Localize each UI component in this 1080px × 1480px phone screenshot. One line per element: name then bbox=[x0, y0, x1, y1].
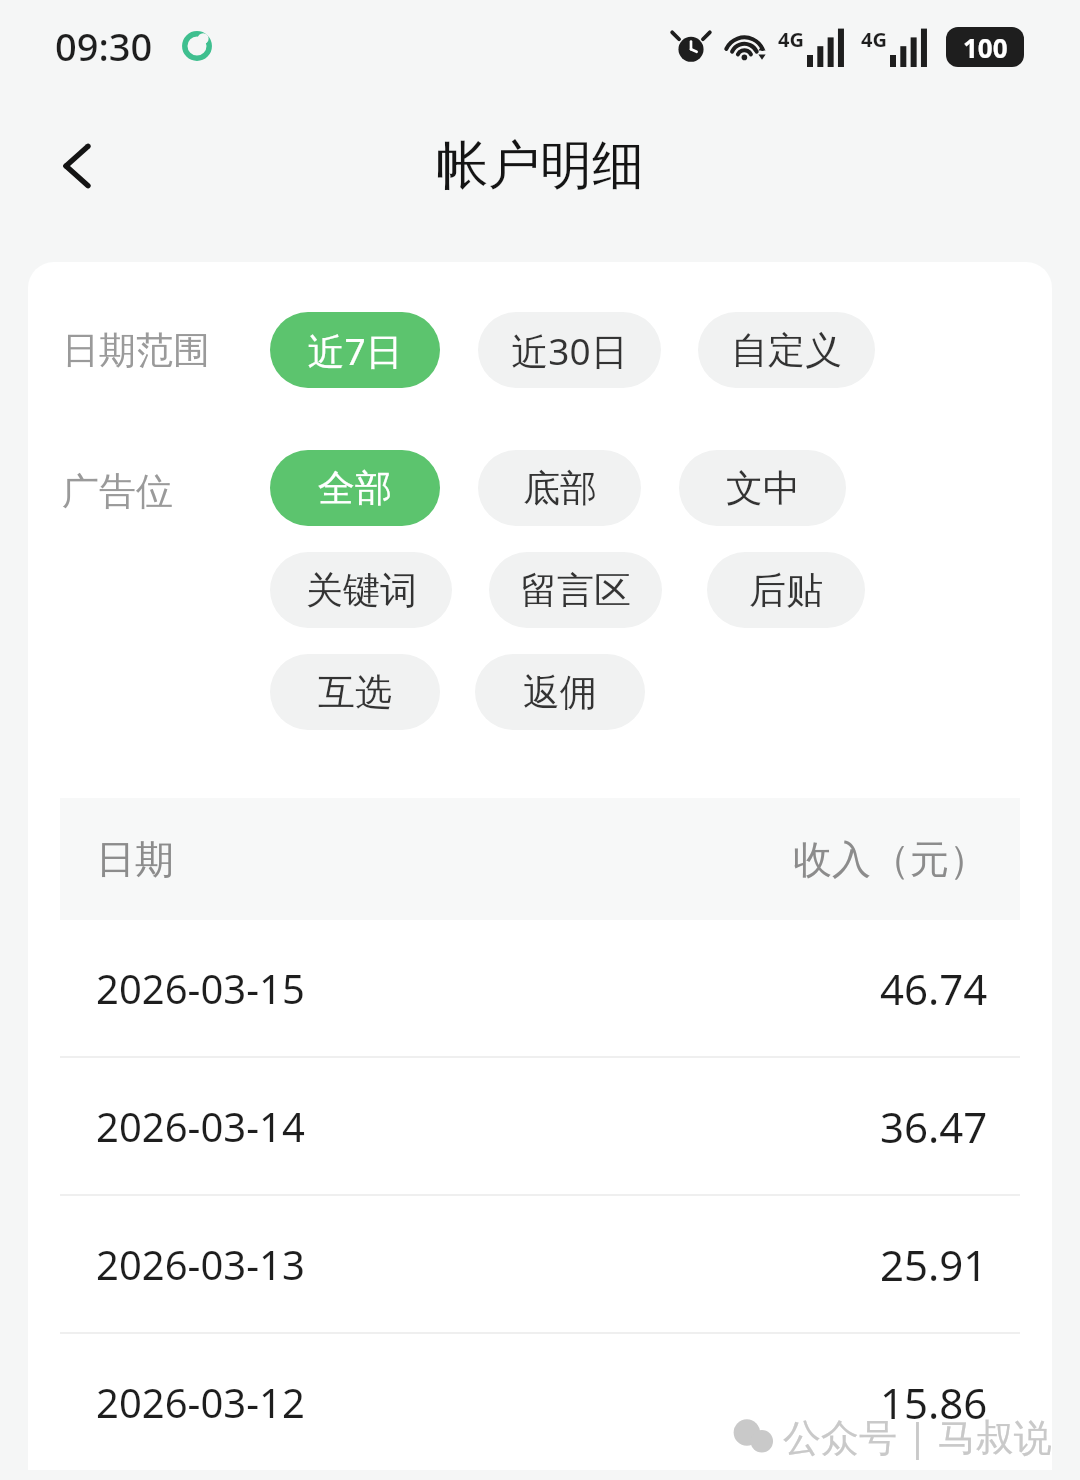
staticText: 留言区 bbox=[520, 567, 631, 614]
staticText: 全部 bbox=[318, 465, 392, 512]
staticText: 46.74 bbox=[880, 960, 988, 1017]
button[interactable]: 文中 bbox=[679, 450, 846, 526]
button[interactable]: 2026-03-13 bbox=[28, 1196, 1052, 1332]
button[interactable]: 2026-03-14 bbox=[28, 1058, 1052, 1194]
staticText: 帐户明细 bbox=[436, 133, 644, 199]
staticText: 后贴 bbox=[749, 567, 823, 614]
staticText: 文中 bbox=[726, 465, 800, 512]
staticText: 日期范围 bbox=[62, 327, 270, 374]
staticText: 2026-03-12 bbox=[96, 1375, 305, 1429]
staticText: 100 bbox=[963, 30, 1008, 65]
staticText: 25.91 bbox=[880, 1236, 988, 1293]
staticText: 4G bbox=[778, 26, 804, 53]
staticText: 收入（元） bbox=[793, 835, 988, 884]
staticText: 2026-03-14 bbox=[96, 1099, 305, 1153]
button[interactable]: 留言区 bbox=[489, 552, 662, 628]
button[interactable]: 自定义 bbox=[698, 312, 875, 388]
staticText: 日期 bbox=[96, 835, 174, 884]
staticText: 4G bbox=[861, 26, 887, 53]
button[interactable]: 互选 bbox=[270, 654, 440, 730]
staticText: 互选 bbox=[318, 669, 392, 716]
button[interactable]: 2026-03-15 bbox=[28, 920, 1052, 1056]
button[interactable]: 近7日 bbox=[270, 312, 440, 388]
staticText: 关键词 bbox=[306, 567, 417, 614]
staticText: 36.47 bbox=[880, 1098, 988, 1155]
staticText: 近30日 bbox=[511, 325, 628, 376]
button[interactable]: 返佣 bbox=[475, 654, 645, 730]
staticText: 2026-03-13 bbox=[96, 1237, 305, 1291]
staticText: 广告位 bbox=[62, 468, 270, 515]
staticText: 09:30 bbox=[55, 20, 153, 72]
staticText: 近7日 bbox=[307, 325, 403, 376]
button[interactable]: Back bbox=[34, 123, 120, 209]
button[interactable]: 全部 bbox=[270, 450, 440, 526]
staticText: 公众号 | 马叔说 bbox=[783, 1410, 1052, 1462]
button[interactable]: 关键词 bbox=[270, 552, 452, 628]
staticText: 底部 bbox=[523, 465, 597, 512]
button[interactable]: 后贴 bbox=[707, 552, 865, 628]
staticText: 15.86 bbox=[880, 1374, 988, 1431]
staticText: 自定义 bbox=[731, 327, 842, 374]
staticText: 2026-03-15 bbox=[96, 961, 305, 1015]
button[interactable]: 底部 bbox=[478, 450, 641, 526]
button[interactable]: 2026-03-12 bbox=[28, 1334, 1052, 1470]
staticText: 返佣 bbox=[523, 669, 597, 716]
button[interactable]: 近30日 bbox=[478, 312, 661, 388]
